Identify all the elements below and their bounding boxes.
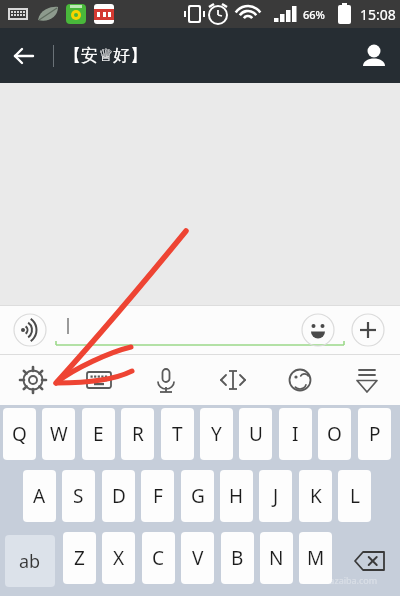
staticText: V bbox=[192, 545, 204, 571]
button[interactable]: Profile bbox=[348, 30, 400, 82]
button[interactable]: P bbox=[358, 408, 391, 460]
staticText: H bbox=[229, 483, 244, 509]
button[interactable]: V bbox=[181, 532, 214, 584]
button[interactable]: Q bbox=[3, 408, 36, 460]
staticText: S bbox=[73, 483, 84, 509]
button[interactable]: T bbox=[161, 408, 194, 460]
staticText: Q bbox=[12, 421, 27, 447]
button[interactable]: X bbox=[102, 532, 135, 584]
staticText: 15:08 bbox=[360, 5, 396, 24]
button[interactable]: Emoji bbox=[300, 312, 336, 348]
staticText: F bbox=[153, 483, 163, 509]
button[interactable]: Back bbox=[0, 32, 48, 80]
staticText: W bbox=[50, 421, 68, 447]
button[interactable]: A bbox=[23, 470, 56, 522]
button[interactable]: G bbox=[181, 470, 214, 522]
button[interactable]: O bbox=[318, 408, 351, 460]
staticText: M bbox=[307, 545, 325, 571]
staticText: X bbox=[113, 545, 125, 571]
button[interactable]: F bbox=[141, 470, 174, 522]
button[interactable]: Y bbox=[200, 408, 233, 460]
staticText: L bbox=[350, 483, 360, 509]
button[interactable]: C bbox=[142, 532, 175, 584]
staticText: R bbox=[132, 421, 144, 447]
button[interactable]: Backspace bbox=[345, 535, 395, 587]
button[interactable]: R bbox=[121, 408, 154, 460]
button[interactable]: H bbox=[220, 470, 253, 522]
button[interactable]: L bbox=[338, 470, 371, 522]
staticText: B bbox=[231, 545, 244, 571]
button[interactable]: Z bbox=[63, 532, 96, 584]
button[interactable]: Settings bbox=[0, 355, 66, 405]
button[interactable]: D bbox=[102, 470, 135, 522]
button[interactable]: W bbox=[42, 408, 75, 460]
button[interactable]: More bbox=[350, 312, 386, 348]
button[interactable]: ab bbox=[5, 535, 55, 587]
button[interactable]: U bbox=[239, 408, 272, 460]
staticText: Z bbox=[74, 545, 85, 571]
button[interactable]: Voice input bbox=[12, 312, 48, 348]
staticText: www.xiazaiba.com bbox=[299, 574, 378, 586]
staticText: N bbox=[269, 545, 284, 571]
button[interactable]: I bbox=[279, 408, 312, 460]
button[interactable]: N bbox=[260, 532, 293, 584]
staticText: T bbox=[172, 421, 183, 447]
button[interactable]: E bbox=[82, 408, 115, 460]
staticText: I bbox=[292, 421, 299, 447]
staticText: G bbox=[191, 483, 205, 509]
button[interactable]: K bbox=[299, 470, 332, 522]
staticText: 66% bbox=[303, 7, 325, 22]
staticText: 【安♕好】 bbox=[64, 45, 148, 66]
button[interactable]: Cursor bbox=[199, 355, 266, 405]
staticText: C bbox=[152, 545, 165, 571]
staticText: O bbox=[327, 421, 342, 447]
staticText: J bbox=[273, 483, 279, 509]
button[interactable]: M bbox=[299, 532, 332, 584]
staticText: E bbox=[93, 421, 104, 447]
button[interactable]: J bbox=[259, 470, 292, 522]
button[interactable]: Voice bbox=[132, 355, 199, 405]
button[interactable]: B bbox=[221, 532, 254, 584]
button[interactable]: Keyboard bbox=[66, 355, 132, 405]
staticText: A bbox=[33, 483, 46, 509]
staticText: ab bbox=[19, 549, 41, 574]
staticText: Y bbox=[211, 421, 222, 447]
button[interactable]: S bbox=[62, 470, 95, 522]
staticText: U bbox=[249, 421, 263, 447]
staticText: P bbox=[369, 421, 381, 447]
button[interactable]: Sticker bbox=[266, 355, 333, 405]
staticText: K bbox=[310, 483, 322, 509]
staticText: D bbox=[112, 483, 126, 509]
button[interactable]: Hide keyboard bbox=[333, 355, 400, 405]
